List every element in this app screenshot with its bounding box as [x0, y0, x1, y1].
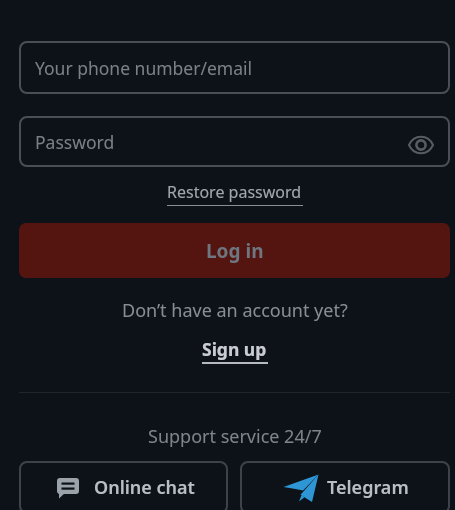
staticText: Your phone number/email [35, 56, 253, 80]
staticText: Online chat [94, 475, 195, 500]
button[interactable]: Your phone number/email [19, 41, 450, 94]
button[interactable]: Sign up [202, 337, 267, 361]
staticText: Don’t have an account yet? [122, 298, 348, 323]
staticText: Log in [206, 238, 264, 264]
button[interactable]: Telegram [240, 461, 450, 510]
button[interactable]: Online chat [19, 461, 228, 510]
button[interactable]: Password [19, 116, 450, 167]
staticText: Telegram [327, 475, 409, 500]
staticText: Support service 24/7 [148, 424, 322, 449]
button[interactable]: Log in [19, 223, 450, 278]
button[interactable]: Restore password [167, 181, 302, 203]
staticText: Password [35, 130, 115, 154]
